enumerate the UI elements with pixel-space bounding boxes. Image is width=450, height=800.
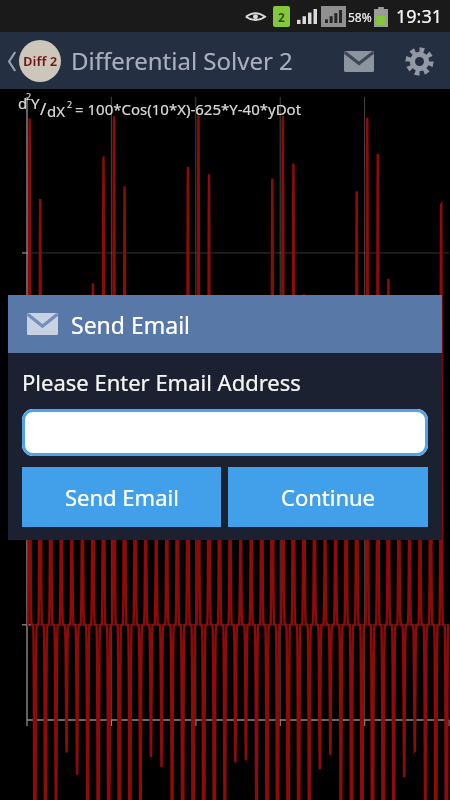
button[interactable]: Navigate up — [5, 34, 64, 88]
button[interactable]: Email address input — [22, 409, 428, 456]
staticText: d — [18, 93, 28, 113]
staticText: 2 — [278, 9, 285, 25]
staticText: / — [40, 97, 47, 120]
staticText: Please Enter Email Address — [22, 367, 301, 397]
staticText: dX — [47, 101, 66, 121]
staticText: 2 — [26, 90, 32, 102]
staticText: 19:31 — [396, 4, 443, 29]
staticText: Y — [31, 93, 40, 113]
staticText: Send Email — [71, 309, 191, 340]
button[interactable]: Send email — [336, 38, 382, 84]
button[interactable]: Continue — [228, 467, 428, 527]
staticText: Differential Solver 2 — [71, 44, 293, 77]
staticText: = 100*Cos(10*X)-625*Y-40*yDot — [75, 99, 302, 119]
staticText: Send Email — [65, 482, 179, 512]
staticText: 2 — [67, 98, 73, 110]
button[interactable]: Send Email — [22, 467, 221, 527]
staticText: 58% — [348, 9, 372, 25]
staticText: Continue — [281, 482, 376, 512]
button[interactable]: Settings — [396, 38, 442, 84]
staticText: Diff 2 — [23, 52, 58, 70]
